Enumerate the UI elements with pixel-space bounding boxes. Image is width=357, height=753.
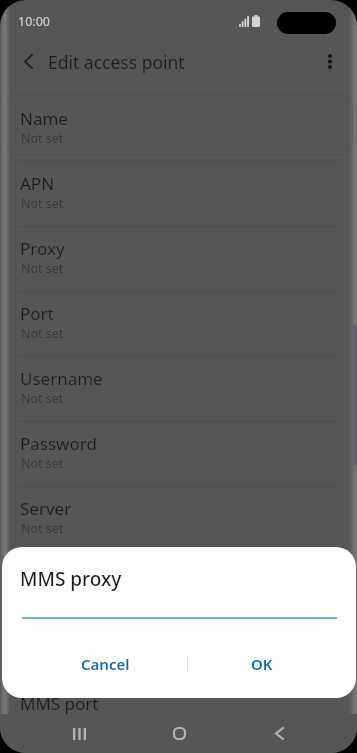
staticText: Not set xyxy=(21,455,64,472)
staticText: OK xyxy=(251,654,273,674)
staticText: Not set xyxy=(21,585,64,602)
staticText: Not set xyxy=(21,325,64,342)
staticText: Not set xyxy=(21,130,64,147)
button[interactable]: Server xyxy=(0,487,357,552)
button[interactable]: Cancel xyxy=(20,647,190,681)
staticText: Edit access point xyxy=(48,50,185,74)
button[interactable]: Name xyxy=(0,97,357,162)
button[interactable]: OK xyxy=(177,647,347,681)
staticText: Password xyxy=(20,432,97,455)
button[interactable]: MMS port xyxy=(0,682,357,747)
button[interactable]: Recent apps xyxy=(55,717,103,750)
staticText: Not set xyxy=(21,390,64,407)
button[interactable]: Back xyxy=(255,717,303,750)
button[interactable]: MMSC xyxy=(0,552,357,617)
staticText: APN xyxy=(20,172,55,195)
button[interactable]: MMS proxy xyxy=(0,617,357,682)
staticText: Server xyxy=(20,497,72,520)
staticText: Name xyxy=(20,107,68,130)
staticText: MMSC xyxy=(20,562,71,585)
button[interactable]: APN xyxy=(0,162,357,227)
staticText: 10:00 xyxy=(18,13,50,30)
staticText: MMS proxy xyxy=(20,566,122,592)
button[interactable]: Home xyxy=(155,717,203,750)
staticText: Not set xyxy=(21,520,64,537)
button[interactable]: Proxy xyxy=(0,227,357,292)
staticText: Proxy xyxy=(20,237,65,260)
button[interactable]: More options xyxy=(315,46,345,76)
button[interactable]: Password xyxy=(0,422,357,487)
staticText: MMS port xyxy=(20,692,99,715)
staticText: Not set xyxy=(21,195,64,212)
button[interactable]: Port xyxy=(0,292,357,357)
staticText: Username xyxy=(20,367,103,390)
staticText: Port xyxy=(20,302,54,325)
staticText: Not set xyxy=(21,260,64,277)
button[interactable]: Navigate up xyxy=(13,46,43,76)
button[interactable]: Username xyxy=(0,357,357,422)
staticText: Cancel xyxy=(81,654,130,674)
